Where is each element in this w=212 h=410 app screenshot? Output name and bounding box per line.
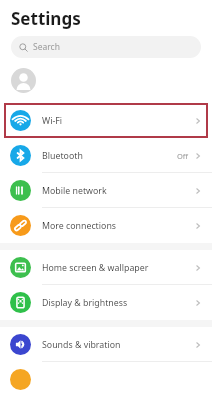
button[interactable]: Home screen & wallpaper (0, 250, 212, 285)
button[interactable]: Display & brightness (0, 285, 212, 320)
staticText: Home screen & wallpaper (42, 262, 149, 274)
staticText: Search (33, 41, 60, 53)
button[interactable]: More connections (0, 208, 212, 243)
staticText: Off (177, 151, 189, 161)
button[interactable]: Sounds & vibration (0, 327, 212, 362)
staticText: Settings (11, 7, 81, 30)
button[interactable] (0, 362, 212, 397)
button[interactable]: Search (11, 36, 201, 58)
staticText: More connections (42, 220, 117, 232)
button[interactable]: Mobile network (0, 173, 212, 208)
staticText: Bluetooth (42, 150, 83, 162)
staticText: Mobile network (42, 185, 107, 197)
staticText: Wi-Fi (42, 115, 63, 127)
button[interactable]: Bluetooth (0, 138, 212, 173)
staticText: Display & brightness (42, 297, 128, 309)
staticText: Sounds & vibration (42, 339, 121, 351)
button[interactable]: Account (11, 68, 36, 93)
button[interactable]: Wi-Fi (4, 103, 208, 138)
